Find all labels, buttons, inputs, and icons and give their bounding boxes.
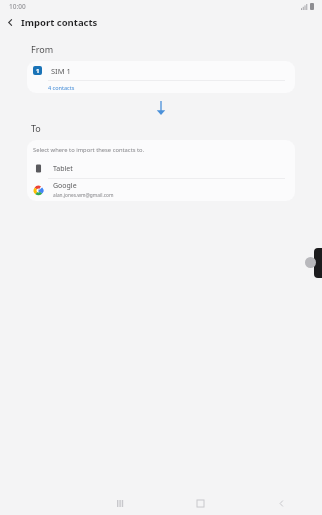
staticText: alan.jones.wm@gmail.com (53, 192, 114, 199)
staticText: Google (53, 181, 77, 191)
staticText: Select where to import these contacts to… (33, 146, 145, 154)
staticText: 10:00 (9, 2, 26, 11)
staticText: SIM 1 (51, 66, 71, 76)
button[interactable]: Home (160, 491, 241, 515)
button[interactable]: Google (27, 179, 295, 201)
staticText: To (31, 122, 41, 134)
staticText: 4 contacts (48, 84, 75, 91)
staticText: Import contacts (21, 16, 98, 29)
staticText: Tablet (53, 164, 73, 174)
button[interactable]: Tablet (27, 159, 295, 178)
button[interactable]: Recent apps (80, 491, 160, 515)
button[interactable]: 1 (27, 61, 295, 93)
button[interactable]: Edge panel (314, 248, 322, 278)
button[interactable]: Navigate up (0, 13, 20, 32)
staticText: 1 (36, 67, 40, 75)
staticText: From (31, 43, 54, 55)
